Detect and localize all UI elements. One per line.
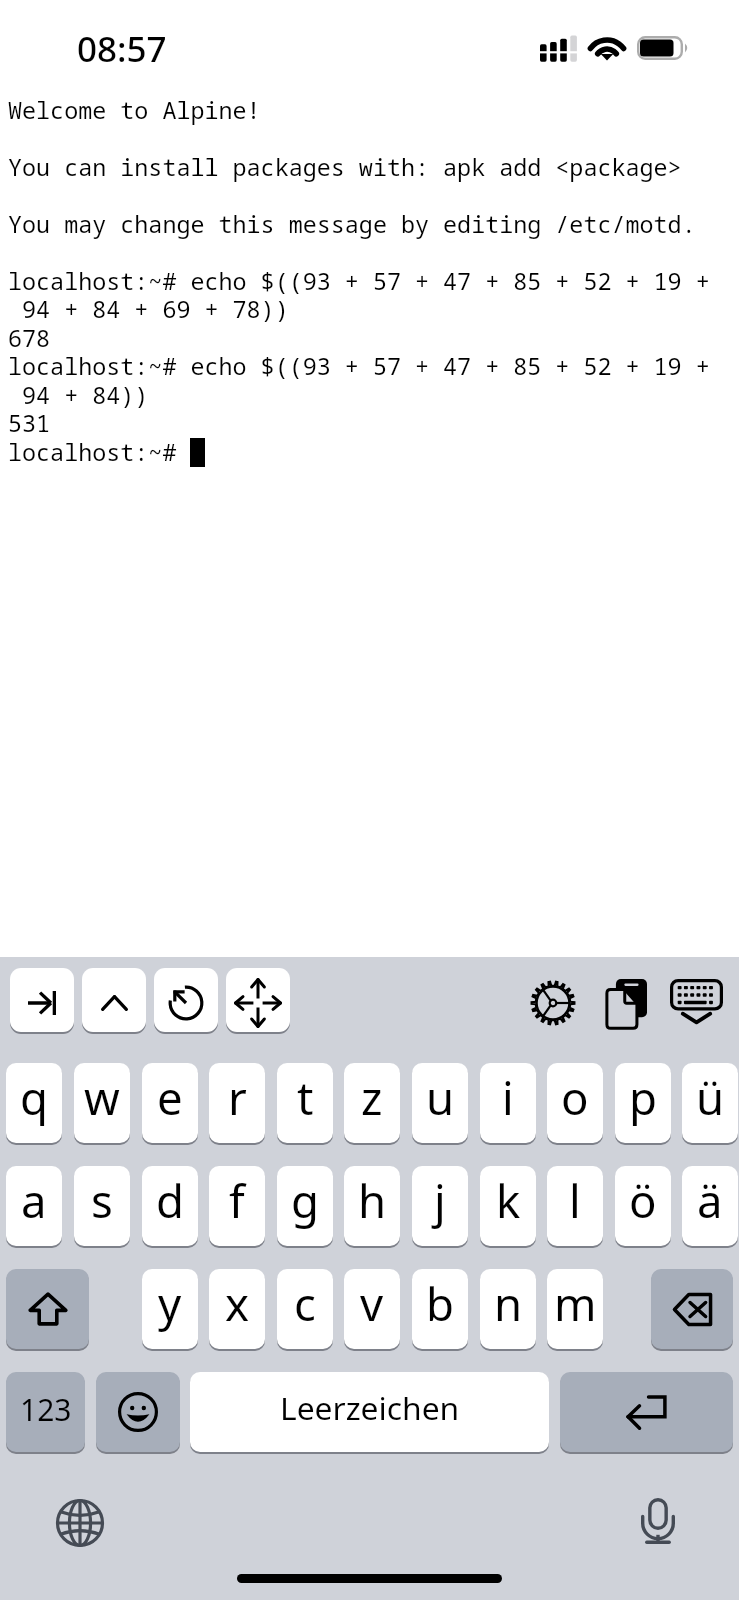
button[interactable]: Return — [560, 1372, 733, 1452]
button[interactable]: Tab — [10, 968, 74, 1032]
button[interactable]: o — [547, 1063, 603, 1143]
button[interactable]: 123 — [6, 1372, 85, 1452]
staticText: k — [496, 1169, 521, 1231]
button[interactable]: r — [209, 1063, 265, 1143]
button[interactable]: p — [615, 1063, 671, 1143]
button[interactable]: h — [344, 1166, 400, 1246]
staticText: t — [297, 1066, 314, 1128]
button[interactable]: Backspace — [651, 1269, 733, 1349]
button[interactable]: Dictate — [632, 1495, 684, 1547]
staticText: localhost:~# echo $((93 + 57 + 47 + 85 +… — [8, 265, 710, 297]
button[interactable]: t — [277, 1063, 333, 1143]
staticText: w — [84, 1066, 120, 1128]
staticText: r — [228, 1066, 247, 1128]
staticText: localhost:~# echo $((93 + 57 + 47 + 85 +… — [8, 350, 710, 382]
staticText: j — [434, 1169, 446, 1231]
staticText: x — [225, 1272, 250, 1334]
staticText: 678 — [8, 322, 51, 354]
staticText: z — [361, 1066, 383, 1128]
button[interactable]: x — [209, 1269, 265, 1349]
staticText: Leerzeichen — [280, 1386, 460, 1429]
staticText: q — [20, 1066, 48, 1128]
staticText: 08:57 — [77, 25, 167, 73]
button[interactable]: g — [277, 1166, 333, 1246]
button[interactable]: ä — [682, 1166, 738, 1246]
button[interactable]: Undo — [154, 968, 218, 1032]
staticText: s — [91, 1169, 113, 1231]
staticText: o — [561, 1066, 589, 1128]
button[interactable]: n — [480, 1269, 536, 1349]
staticText: g — [291, 1169, 319, 1231]
button[interactable]: ö — [615, 1166, 671, 1246]
button[interactable]: a — [6, 1166, 62, 1246]
button[interactable]: Emoji — [96, 1372, 180, 1452]
button[interactable]: y — [142, 1269, 198, 1349]
button[interactable]: Next keyboard — [54, 1497, 106, 1549]
button[interactable]: c — [277, 1269, 333, 1349]
button[interactable]: i — [480, 1063, 536, 1143]
staticText: You can install packages with: apk add <… — [8, 151, 682, 183]
button[interactable]: u — [412, 1063, 468, 1143]
staticText: v — [360, 1272, 384, 1334]
button[interactable]: k — [480, 1166, 536, 1246]
button[interactable]: ü — [682, 1063, 738, 1143]
button[interactable]: j — [412, 1166, 468, 1246]
button[interactable]: f — [209, 1166, 265, 1246]
staticText: l — [569, 1169, 581, 1231]
staticText: m — [554, 1272, 597, 1334]
staticText: 94 + 84 + 69 + 78)) — [8, 293, 289, 325]
button[interactable]: w — [74, 1063, 130, 1143]
button[interactable]: q — [6, 1063, 62, 1143]
button[interactable]: b — [412, 1269, 468, 1349]
button[interactable]: s — [74, 1166, 130, 1246]
button[interactable]: Arrow keys — [226, 968, 290, 1032]
button[interactable]: m — [547, 1269, 603, 1349]
staticText: 94 + 84)) — [8, 379, 149, 411]
staticText: ä — [697, 1169, 723, 1231]
button[interactable]: v — [344, 1269, 400, 1349]
button[interactable]: l — [547, 1166, 603, 1246]
button[interactable]: z — [344, 1063, 400, 1143]
staticText: n — [494, 1272, 523, 1334]
staticText: c — [294, 1272, 316, 1334]
staticText: You may change this message by editing /… — [8, 208, 696, 240]
button[interactable]: Control — [82, 968, 146, 1032]
staticText: ö — [629, 1169, 657, 1231]
staticText: f — [229, 1169, 245, 1231]
staticText: 531 — [8, 407, 51, 439]
staticText: p — [629, 1066, 657, 1128]
staticText: ü — [696, 1066, 725, 1128]
button[interactable]: Paste — [595, 965, 657, 1041]
button[interactable]: e — [142, 1063, 198, 1143]
staticText: a — [21, 1169, 47, 1231]
staticText: localhost:~# — [8, 436, 191, 468]
staticText: u — [426, 1066, 455, 1128]
staticText: b — [426, 1272, 454, 1334]
staticText: 123 — [20, 1389, 72, 1430]
button[interactable]: Settings — [521, 965, 585, 1041]
button[interactable]: Shift — [6, 1269, 89, 1349]
button[interactable]: d — [142, 1166, 198, 1246]
staticText: d — [156, 1169, 184, 1231]
button[interactable]: Hide keyboard — [664, 963, 728, 1039]
staticText: Welcome to Alpine! — [8, 94, 261, 126]
staticText: y — [158, 1272, 182, 1334]
staticText: i — [502, 1066, 514, 1128]
button[interactable]: Leerzeichen — [190, 1372, 549, 1452]
staticText: e — [157, 1066, 183, 1128]
staticText: h — [358, 1169, 387, 1231]
